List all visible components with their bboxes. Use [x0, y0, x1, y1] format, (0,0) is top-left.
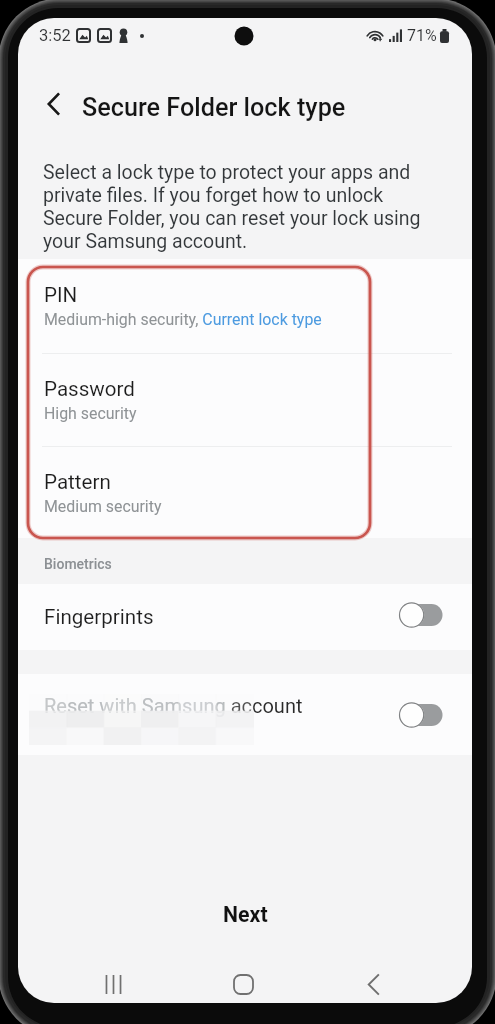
- button[interactable]: Recent apps: [89, 960, 137, 1003]
- staticText: Medium-high security, Current lock type: [44, 310, 322, 329]
- button[interactable]: [18, 353, 472, 446]
- staticText: Pattern: [44, 470, 111, 494]
- staticText: Fingerprints: [44, 605, 154, 629]
- button[interactable]: Back: [348, 960, 396, 1003]
- staticText: 71%: [407, 26, 437, 45]
- button[interactable]: [18, 674, 472, 755]
- staticText: Medium security: [44, 497, 162, 516]
- button[interactable]: [18, 446, 472, 539]
- button[interactable]: Back: [32, 82, 76, 126]
- staticText: Select a lock type to protect your apps …: [43, 161, 428, 253]
- button[interactable]: [18, 259, 472, 352]
- button[interactable]: Fingerprints: [18, 584, 472, 650]
- staticText: High security: [44, 404, 137, 423]
- button[interactable]: Home: [219, 960, 267, 1003]
- staticText: 3:52: [39, 26, 71, 45]
- staticText: Secure Folder lock type: [82, 93, 346, 123]
- staticText: Reset with Samsung account: [44, 694, 303, 717]
- staticText: Password: [44, 377, 135, 401]
- button[interactable]: Next: [205, 897, 285, 931]
- staticText: Next: [223, 902, 268, 927]
- staticText: PIN: [44, 283, 78, 307]
- staticText: Biometrics: [44, 556, 112, 572]
